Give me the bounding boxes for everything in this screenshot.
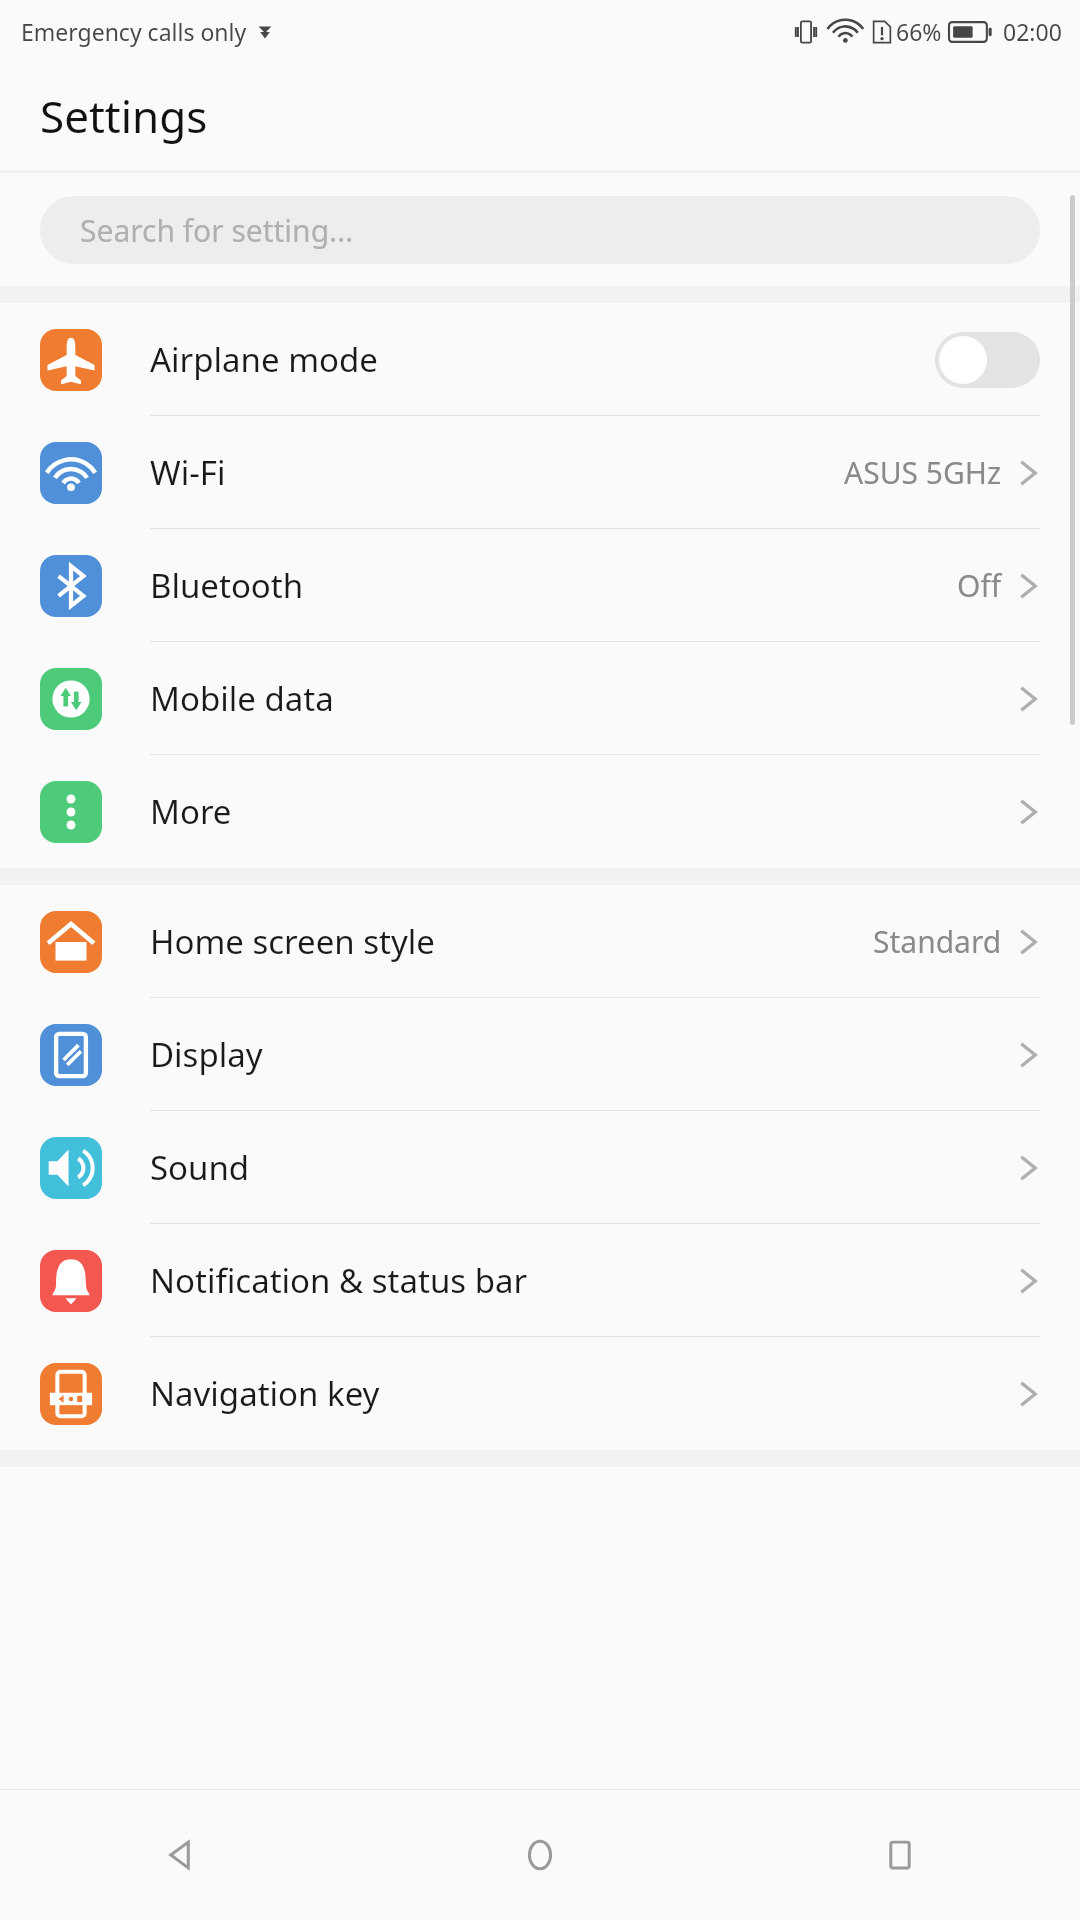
staticText: Mobile data	[150, 676, 1016, 721]
staticText: 02:00	[1003, 16, 1062, 47]
staticText: Navigation key	[150, 1371, 1016, 1416]
staticText: ASUS 5GHz	[844, 452, 1002, 493]
staticText: Wi-Fi	[150, 450, 844, 495]
button[interactable]: Bluetooth	[0, 529, 1080, 642]
staticText: Off	[957, 565, 1002, 606]
button[interactable]: Display	[0, 998, 1080, 1111]
staticText: Settings	[40, 86, 208, 146]
staticText: 66%	[896, 16, 942, 47]
button[interactable]: Home screen style	[0, 885, 1080, 998]
staticText: Standard	[873, 921, 1002, 962]
button[interactable]: Airplane mode toggle	[935, 332, 1040, 388]
button[interactable]: Navigation key	[0, 1337, 1080, 1450]
staticText: Home screen style	[150, 919, 873, 964]
staticText: Search for setting...	[80, 210, 354, 251]
button[interactable]: Recent apps	[720, 1790, 1080, 1920]
staticText: Notification & status bar	[150, 1258, 1016, 1303]
staticText: Display	[150, 1032, 1016, 1077]
button[interactable]: Notification & status bar	[0, 1224, 1080, 1337]
button[interactable]: Mobile data	[0, 642, 1080, 755]
button[interactable]: Airplane mode	[0, 303, 1080, 416]
staticText: Airplane mode	[150, 337, 935, 382]
staticText: Sound	[150, 1145, 1016, 1190]
button[interactable]: Back	[0, 1790, 360, 1920]
button[interactable]: Search for setting...	[40, 196, 1040, 264]
button[interactable]: Sound	[0, 1111, 1080, 1224]
button[interactable]: More	[0, 755, 1080, 868]
staticText: Emergency calls only	[21, 16, 247, 47]
button[interactable]: Home	[360, 1790, 720, 1920]
staticText: More	[150, 789, 1016, 834]
button[interactable]: Wi-Fi	[0, 416, 1080, 529]
staticText: Bluetooth	[150, 563, 957, 608]
